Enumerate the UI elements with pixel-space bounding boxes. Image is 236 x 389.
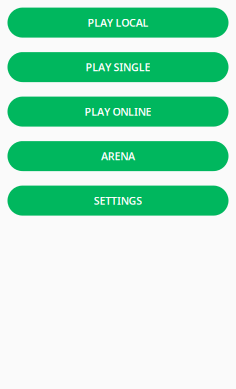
staticText: SETTINGS [94, 193, 142, 208]
button[interactable]: PLAY ONLINE [7, 97, 228, 127]
button[interactable]: ARENA [7, 141, 228, 171]
staticText: PLAY SINGLE [85, 60, 150, 74]
staticText: ARENA [101, 149, 135, 163]
button[interactable]: PLAY SINGLE [7, 52, 228, 82]
button[interactable]: PLAY LOCAL [7, 8, 228, 38]
button[interactable]: SETTINGS [7, 186, 228, 216]
staticText: PLAY LOCAL [87, 15, 149, 30]
staticText: PLAY ONLINE [84, 104, 151, 119]
